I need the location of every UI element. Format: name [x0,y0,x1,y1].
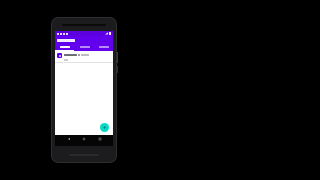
button[interactable]: Back [67,137,71,141]
button[interactable]: Recents [98,137,102,141]
button[interactable] [94,44,113,50]
button[interactable] [55,51,113,59]
button[interactable] [55,44,75,50]
button[interactable]: Home [82,137,86,141]
button[interactable]: Create [100,123,109,132]
button[interactable] [75,44,94,50]
